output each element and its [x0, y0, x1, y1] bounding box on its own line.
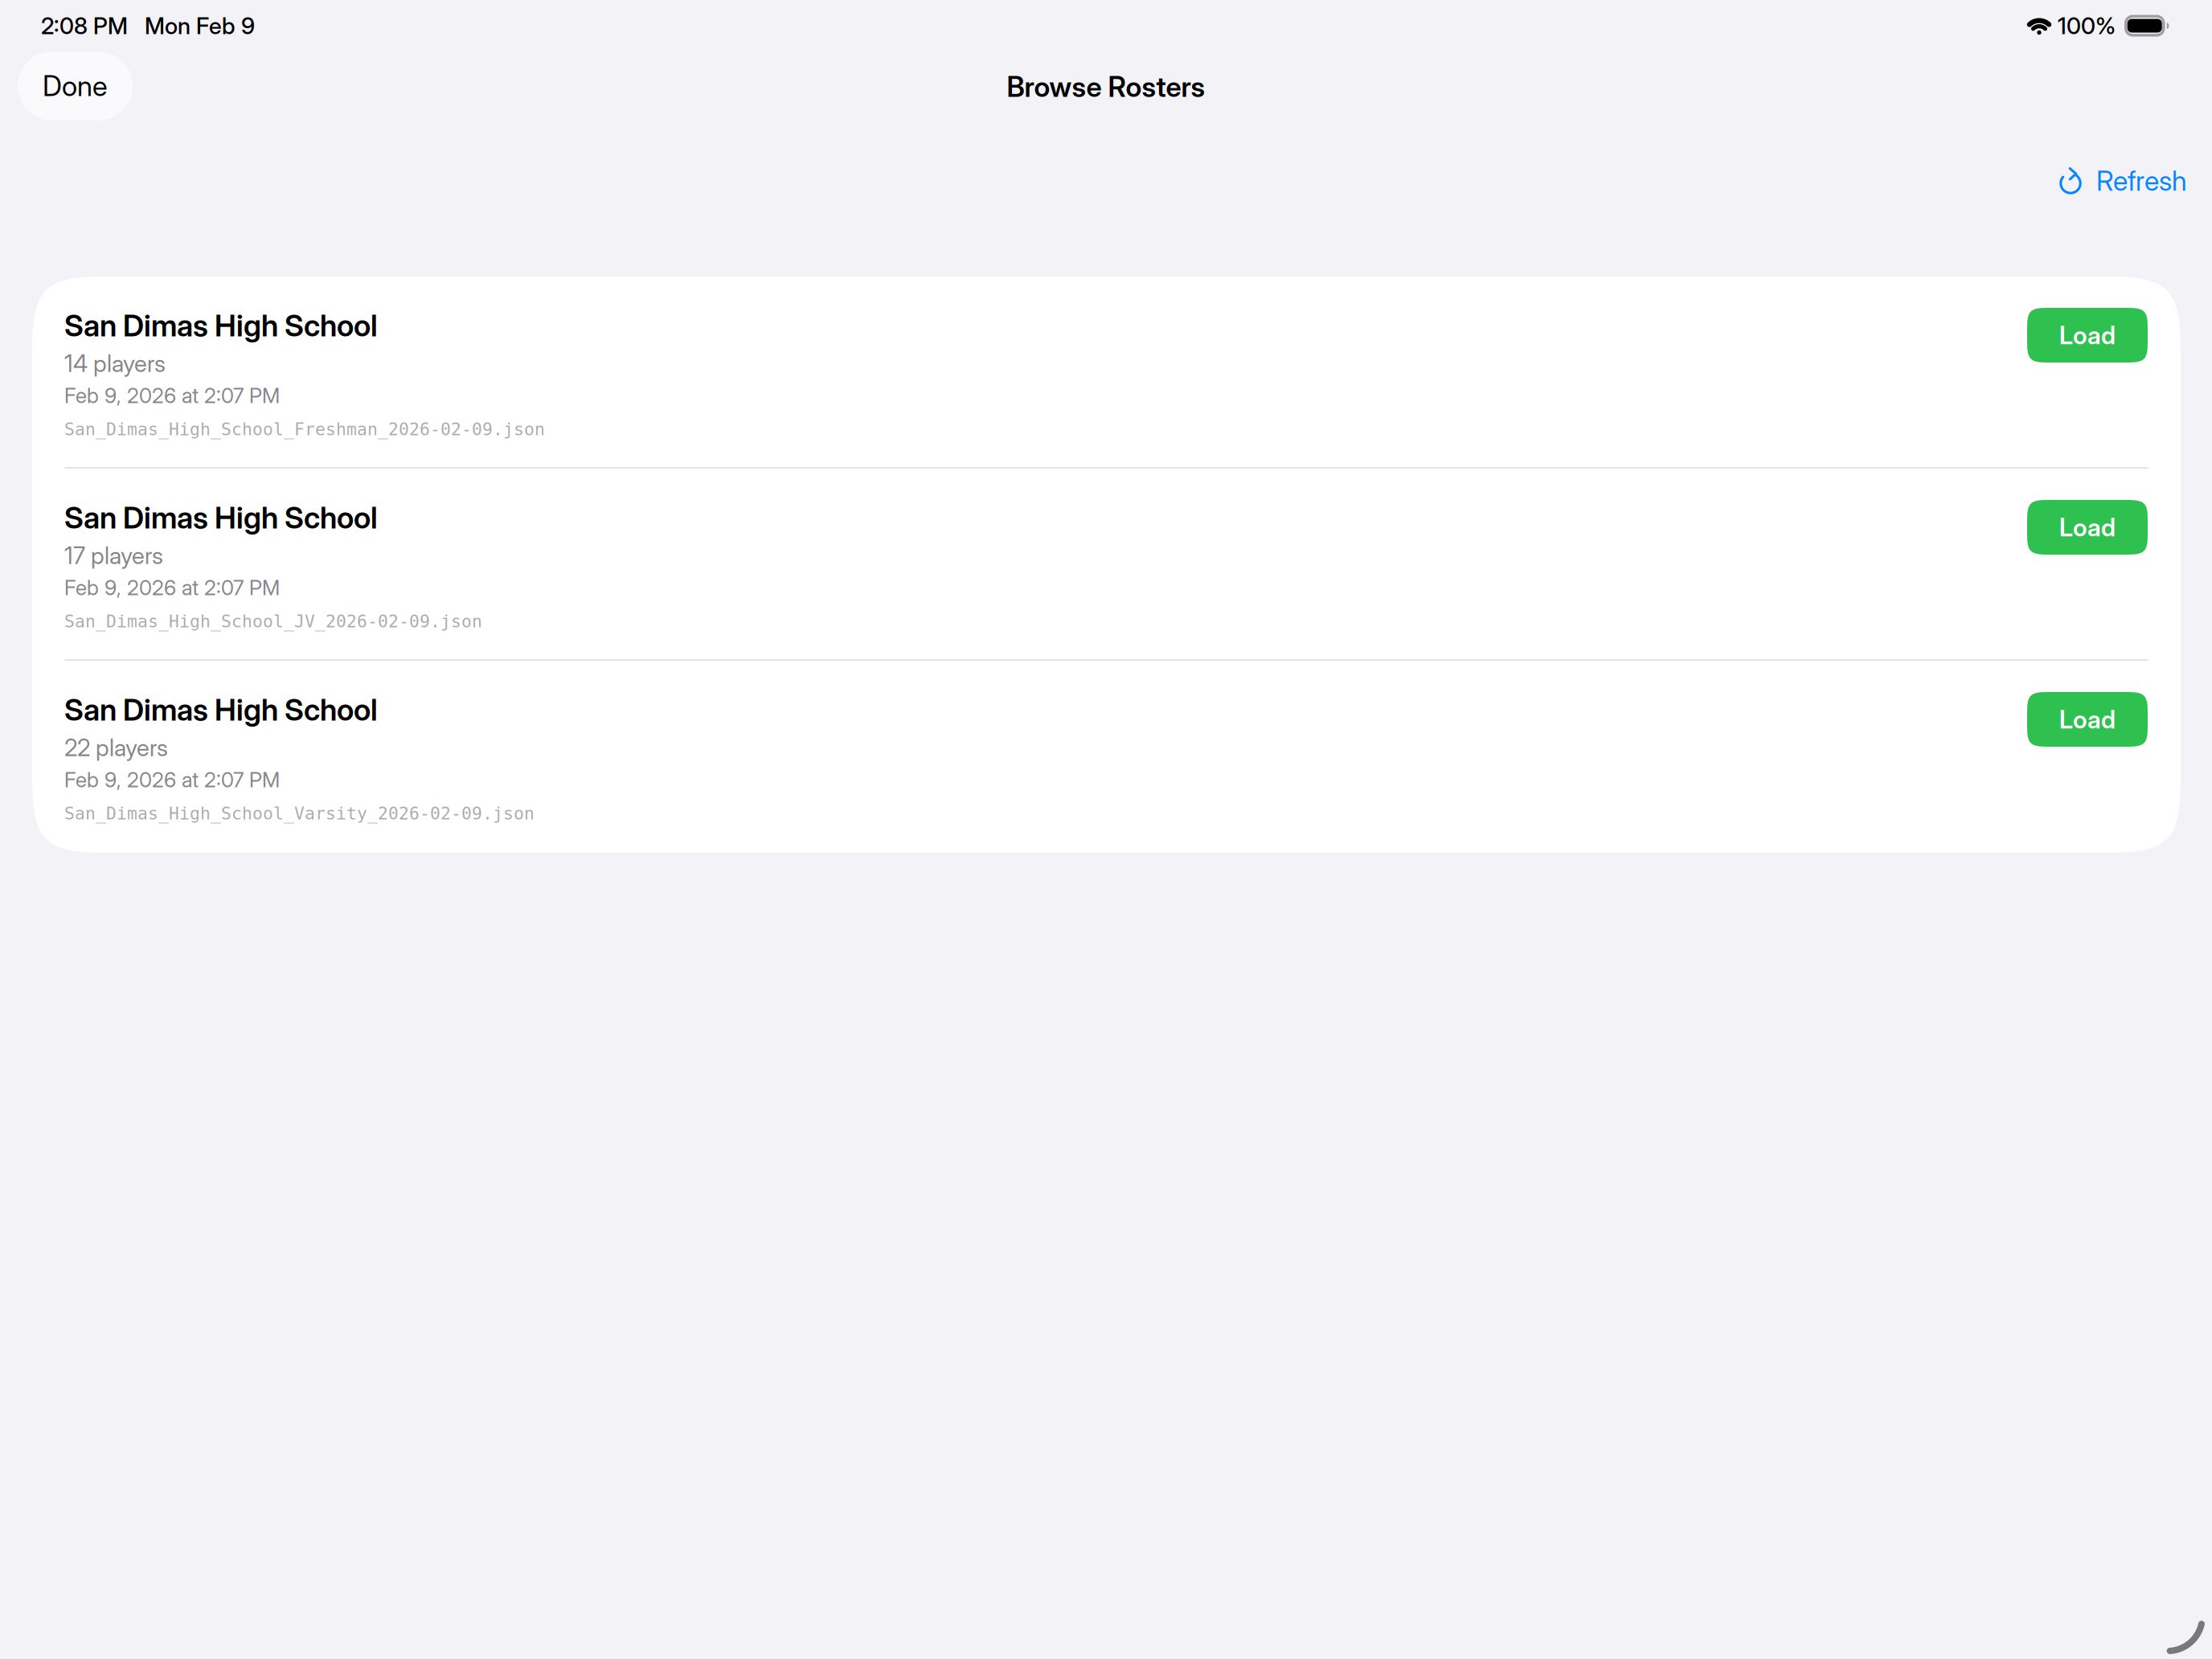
button[interactable]: Refresh: [2044, 156, 2202, 206]
staticText: 22 players: [64, 733, 168, 762]
staticText: 14 players: [64, 349, 166, 378]
staticText: San_Dimas_High_School_Freshman_2026-02-0…: [64, 419, 545, 439]
staticText: Load: [2059, 704, 2116, 734]
staticText: Browse Rosters: [1007, 70, 1205, 104]
staticText: San Dimas High School: [64, 692, 378, 728]
button[interactable]: San Dimas High School: [32, 276, 2181, 467]
staticText: San Dimas High School: [64, 307, 378, 344]
staticText: Feb 9, 2026 at 2:07 PM: [64, 383, 280, 408]
staticText: Done: [43, 69, 108, 103]
staticText: 2:08 PM: [41, 12, 128, 40]
staticText: Feb 9, 2026 at 2:07 PM: [64, 767, 280, 792]
staticText: San_Dimas_High_School_JV_2026-02-09.json: [64, 611, 482, 631]
staticText: Mon Feb 9: [145, 12, 255, 40]
button[interactable]: Load 17 players roster: [2027, 500, 2148, 555]
staticText: San Dimas High School: [64, 499, 378, 536]
staticText: Load: [2059, 512, 2116, 542]
staticText: 17 players: [64, 541, 163, 570]
staticText: 100%: [2058, 12, 2116, 40]
button[interactable]: San Dimas High School: [32, 469, 2181, 659]
staticText: San_Dimas_High_School_Varsity_2026-02-09…: [64, 803, 535, 823]
button[interactable]: Load 22 players roster: [2027, 692, 2148, 747]
staticText: Feb 9, 2026 at 2:07 PM: [64, 575, 280, 600]
staticText: Load: [2059, 320, 2116, 350]
button[interactable]: Load 14 players roster: [2027, 308, 2148, 363]
staticText: Refresh: [2096, 164, 2187, 197]
button[interactable]: San Dimas High School: [32, 661, 2181, 853]
button[interactable]: Done: [18, 51, 133, 121]
